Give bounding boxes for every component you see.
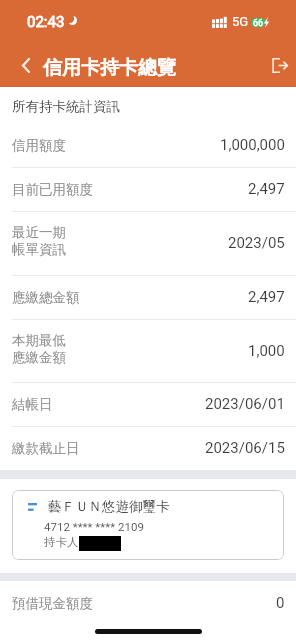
- staticText: 2023/06/01: [205, 395, 285, 413]
- staticText: 應繳金額: [12, 349, 66, 366]
- button[interactable]: 預借現金額度: [0, 581, 296, 625]
- staticText: 藝ＦＵＮ悠遊御璽卡: [48, 498, 170, 515]
- staticText: 持卡人: [44, 535, 79, 549]
- staticText: 2023/06/15: [205, 439, 285, 457]
- button[interactable]: 目前已用額度: [0, 167, 296, 211]
- staticText: 2,497: [248, 180, 285, 198]
- staticText: 帳單資訊: [12, 241, 66, 258]
- button[interactable]: 信用額度: [0, 123, 296, 167]
- staticText: 所有持卡統計資訊: [12, 98, 120, 115]
- staticText: 目前已用額度: [12, 181, 93, 198]
- staticText: 02:43: [27, 13, 65, 31]
- staticText: 66: [253, 18, 264, 27]
- staticText: 2,497: [248, 288, 285, 306]
- button[interactable]: 應繳總金額: [0, 275, 296, 319]
- staticText: 信用卡持卡總覽: [43, 56, 176, 80]
- staticText: 繳款截止日: [12, 440, 80, 457]
- staticText: 預借現金額度: [12, 595, 276, 612]
- staticText: 應繳總金額: [12, 289, 80, 306]
- button[interactable]: Back: [14, 43, 38, 87]
- staticText: 最近一期: [12, 224, 66, 241]
- staticText: 結帳日: [12, 396, 53, 413]
- staticText: 1,000,000: [220, 136, 285, 154]
- staticText: 5G: [232, 14, 249, 29]
- button[interactable]: 本期最低: [0, 319, 296, 382]
- button[interactable]: 藝ＦＵＮ悠遊御璽卡: [12, 490, 284, 560]
- staticText: 4712 **** **** 2109: [44, 520, 144, 533]
- button[interactable]: Logout: [263, 43, 295, 87]
- staticText: 2023/05: [228, 234, 285, 252]
- staticText: 本期最低: [12, 332, 66, 349]
- staticText: 1,000: [248, 342, 285, 360]
- button[interactable]: 繳款截止日: [0, 426, 296, 470]
- button[interactable]: 最近一期: [0, 211, 296, 275]
- staticText: 信用額度: [12, 137, 66, 154]
- button[interactable]: 結帳日: [0, 382, 296, 426]
- staticText: 0: [276, 594, 285, 612]
